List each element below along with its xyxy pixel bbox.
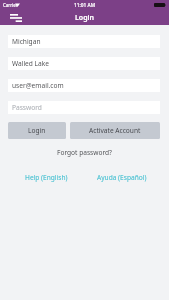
staticText: user@email.com bbox=[12, 81, 64, 90]
staticText: 11:01 AM bbox=[74, 2, 96, 9]
staticText: Forgot password? bbox=[57, 148, 112, 157]
staticText: Carrier bbox=[3, 2, 18, 8]
button[interactable]: Forgot password? bbox=[53, 146, 116, 159]
button[interactable]: Ayuda (Español) bbox=[84, 172, 160, 182]
button[interactable]: user@email.com bbox=[8, 79, 160, 92]
button[interactable]: Login bbox=[8, 122, 66, 139]
staticText: Login bbox=[28, 126, 46, 135]
staticText: Password bbox=[12, 103, 42, 112]
button[interactable]: Michigan bbox=[8, 35, 160, 48]
button[interactable]: Help (English) bbox=[8, 172, 84, 182]
button[interactable]: Open navigation menu bbox=[0, 10, 26, 25]
staticText: Michigan bbox=[12, 37, 41, 46]
button[interactable]: Password bbox=[8, 101, 160, 114]
button[interactable]: Activate Account bbox=[70, 122, 160, 139]
staticText: Ayuda (Español) bbox=[97, 173, 147, 182]
staticText: Activate Account bbox=[89, 126, 141, 135]
staticText: Walled Lake bbox=[12, 59, 49, 68]
button[interactable]: Walled Lake bbox=[8, 57, 160, 70]
staticText: Help (English) bbox=[25, 173, 68, 182]
staticText: Login bbox=[75, 13, 94, 23]
